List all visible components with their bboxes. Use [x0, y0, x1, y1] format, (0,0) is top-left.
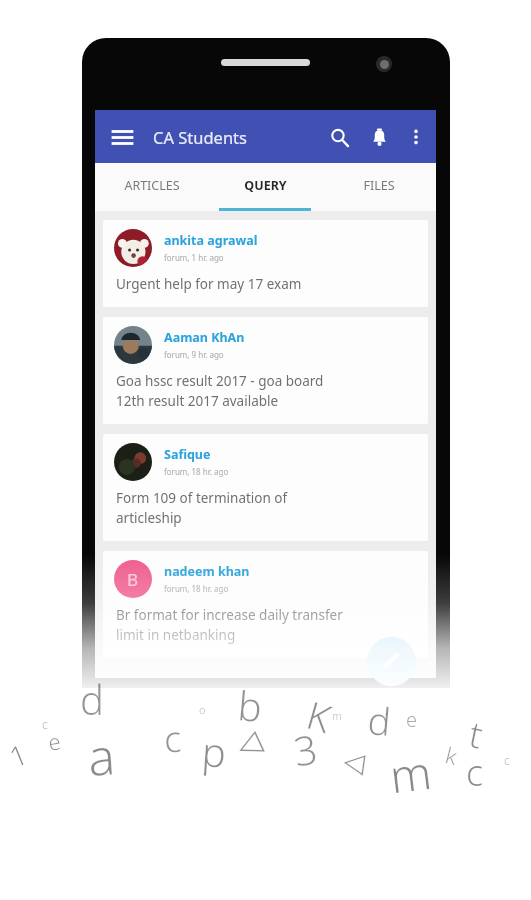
- staticText: m: [332, 708, 342, 723]
- button[interactable]: FILES: [322, 163, 436, 211]
- staticText: 3: [290, 721, 321, 777]
- staticText: K: [301, 688, 338, 744]
- button[interactable]: Aaman KhAn: [103, 317, 428, 424]
- staticText: e: [406, 706, 418, 733]
- staticText: QUERY: [244, 177, 287, 194]
- staticText: B: [127, 568, 139, 591]
- staticText: e: [45, 725, 63, 757]
- staticText: 1: [3, 734, 33, 776]
- button[interactable]: New post: [367, 637, 416, 686]
- staticText: d: [80, 672, 104, 726]
- staticText: Safique: [164, 446, 211, 463]
- staticText: Goa hssc result 2017 - goa board 12th re…: [116, 372, 324, 410]
- button[interactable]: Search: [319, 117, 359, 157]
- staticText: forum, 1 hr. ago: [164, 252, 224, 263]
- button[interactable]: B: [103, 551, 428, 658]
- staticText: forum, 9 hr. ago: [164, 349, 224, 360]
- button[interactable]: Notifications: [359, 117, 399, 157]
- staticText: nadeem khan: [164, 563, 250, 580]
- staticText: forum, 18 hr. ago: [164, 583, 229, 594]
- staticText: c: [504, 752, 510, 768]
- staticText: b: [236, 677, 264, 733]
- staticText: c: [163, 714, 183, 763]
- staticText: Form 109 of termination of articleship: [116, 489, 288, 527]
- button[interactable]: QUERY: [208, 163, 322, 211]
- staticText: CA Students: [153, 126, 247, 148]
- staticText: Aaman KhAn: [164, 329, 245, 346]
- staticText: forum, 18 hr. ago: [164, 466, 229, 477]
- staticText: m: [386, 740, 436, 807]
- staticText: k: [442, 739, 460, 771]
- staticText: d: [366, 693, 393, 747]
- button[interactable]: ankita agrawal: [103, 220, 428, 307]
- staticText: a: [86, 721, 117, 791]
- staticText: ◁: [342, 745, 367, 778]
- staticText: FILES: [363, 177, 395, 194]
- staticText: p: [200, 723, 228, 779]
- staticText: c: [466, 748, 484, 797]
- staticText: Br format for increase daily transfer li…: [116, 606, 343, 644]
- button[interactable]: More options: [399, 120, 433, 154]
- staticText: o: [199, 702, 206, 717]
- staticText: c: [42, 716, 48, 732]
- button[interactable]: Open navigation drawer: [102, 117, 142, 157]
- button[interactable]: Safique: [103, 434, 428, 541]
- button[interactable]: ARTICLES: [95, 163, 208, 211]
- staticText: t: [465, 709, 488, 760]
- staticText: ankita agrawal: [164, 232, 258, 249]
- staticText: ◁: [231, 723, 267, 764]
- staticText: Urgent help for may 17 exam: [116, 275, 302, 293]
- staticText: ARTICLES: [124, 177, 180, 194]
